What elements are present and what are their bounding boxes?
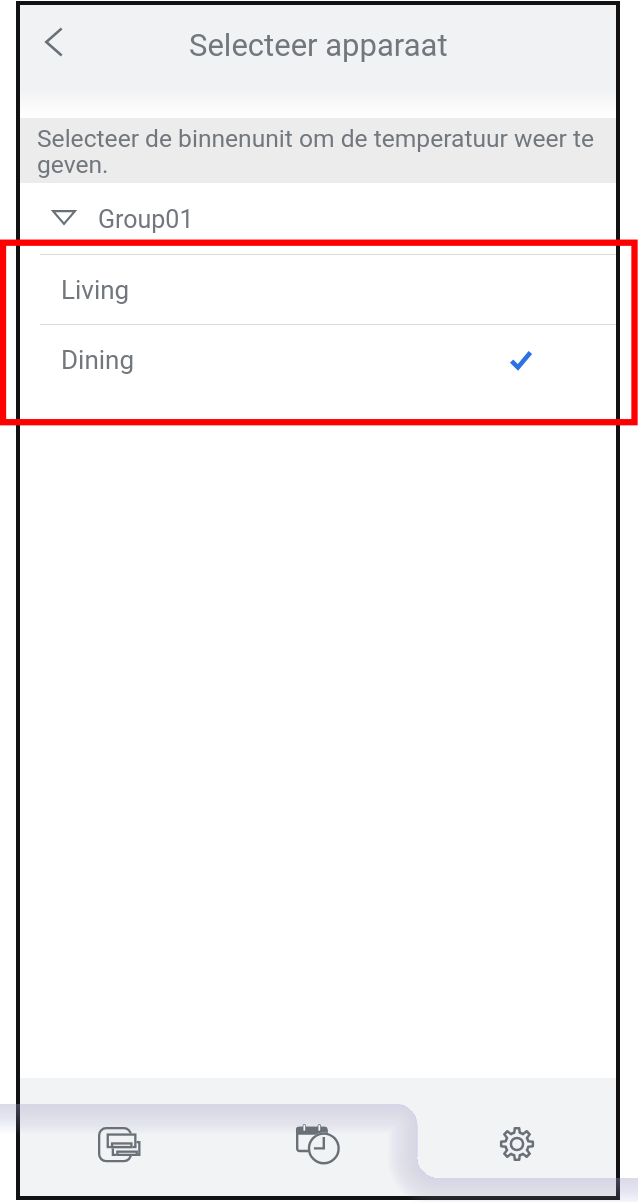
button[interactable]: Settings: [417, 1078, 616, 1196]
button[interactable]: Devices: [20, 1078, 218, 1196]
button[interactable]: Living: [20, 255, 616, 324]
staticText: Selecteer apparaat: [189, 27, 448, 63]
staticText: Dining: [61, 345, 135, 375]
staticText: Living: [61, 275, 130, 305]
staticText: Group01: [98, 205, 194, 234]
staticText: Selecteer de binnenunit om de temperatuu…: [37, 124, 606, 179]
button[interactable]: Schedule: [218, 1078, 417, 1196]
button[interactable]: Group01: [20, 183, 616, 254]
button[interactable]: Back: [20, 5, 82, 89]
button[interactable]: Dining: [20, 325, 616, 394]
